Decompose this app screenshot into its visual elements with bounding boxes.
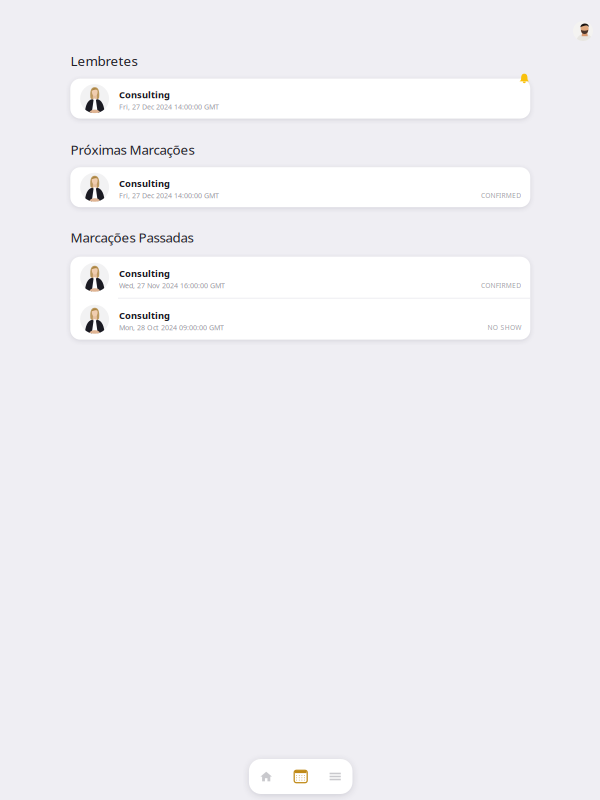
staticText: Próximas Marcações: [70, 140, 194, 159]
button[interactable]: Consulting: [70, 299, 530, 340]
staticText: Consulting: [119, 267, 170, 280]
button[interactable]: Consulting: [70, 167, 530, 207]
button[interactable]: Menu: [318, 759, 352, 794]
button[interactable]: Appointments: [283, 759, 318, 794]
staticText: Lembretes: [70, 52, 137, 70]
button[interactable]: Consulting: [70, 257, 530, 298]
staticText: Consulting: [119, 309, 170, 322]
button[interactable]: Home: [249, 759, 283, 794]
staticText: NO SHOW: [487, 323, 521, 332]
staticText: Fri, 27 Dec 2024 14:00:00 GMT: [119, 191, 219, 200]
button[interactable]: Consulting: [70, 79, 530, 119]
staticText: Mon, 28 Oct 2024 09:00:00 GMT: [119, 323, 224, 332]
staticText: Fri, 27 Dec 2024 14:00:00 GMT: [119, 102, 219, 112]
staticText: Wed, 27 Nov 2024 16:00:00 GMT: [119, 281, 225, 290]
button[interactable]: Profile: [573, 21, 593, 41]
staticText: Consulting: [119, 177, 170, 190]
staticText: Consulting: [119, 88, 170, 101]
staticText: CONFIRMED: [481, 281, 521, 290]
staticText: CONFIRMED: [481, 191, 521, 200]
staticText: Marcações Passadas: [70, 228, 193, 246]
